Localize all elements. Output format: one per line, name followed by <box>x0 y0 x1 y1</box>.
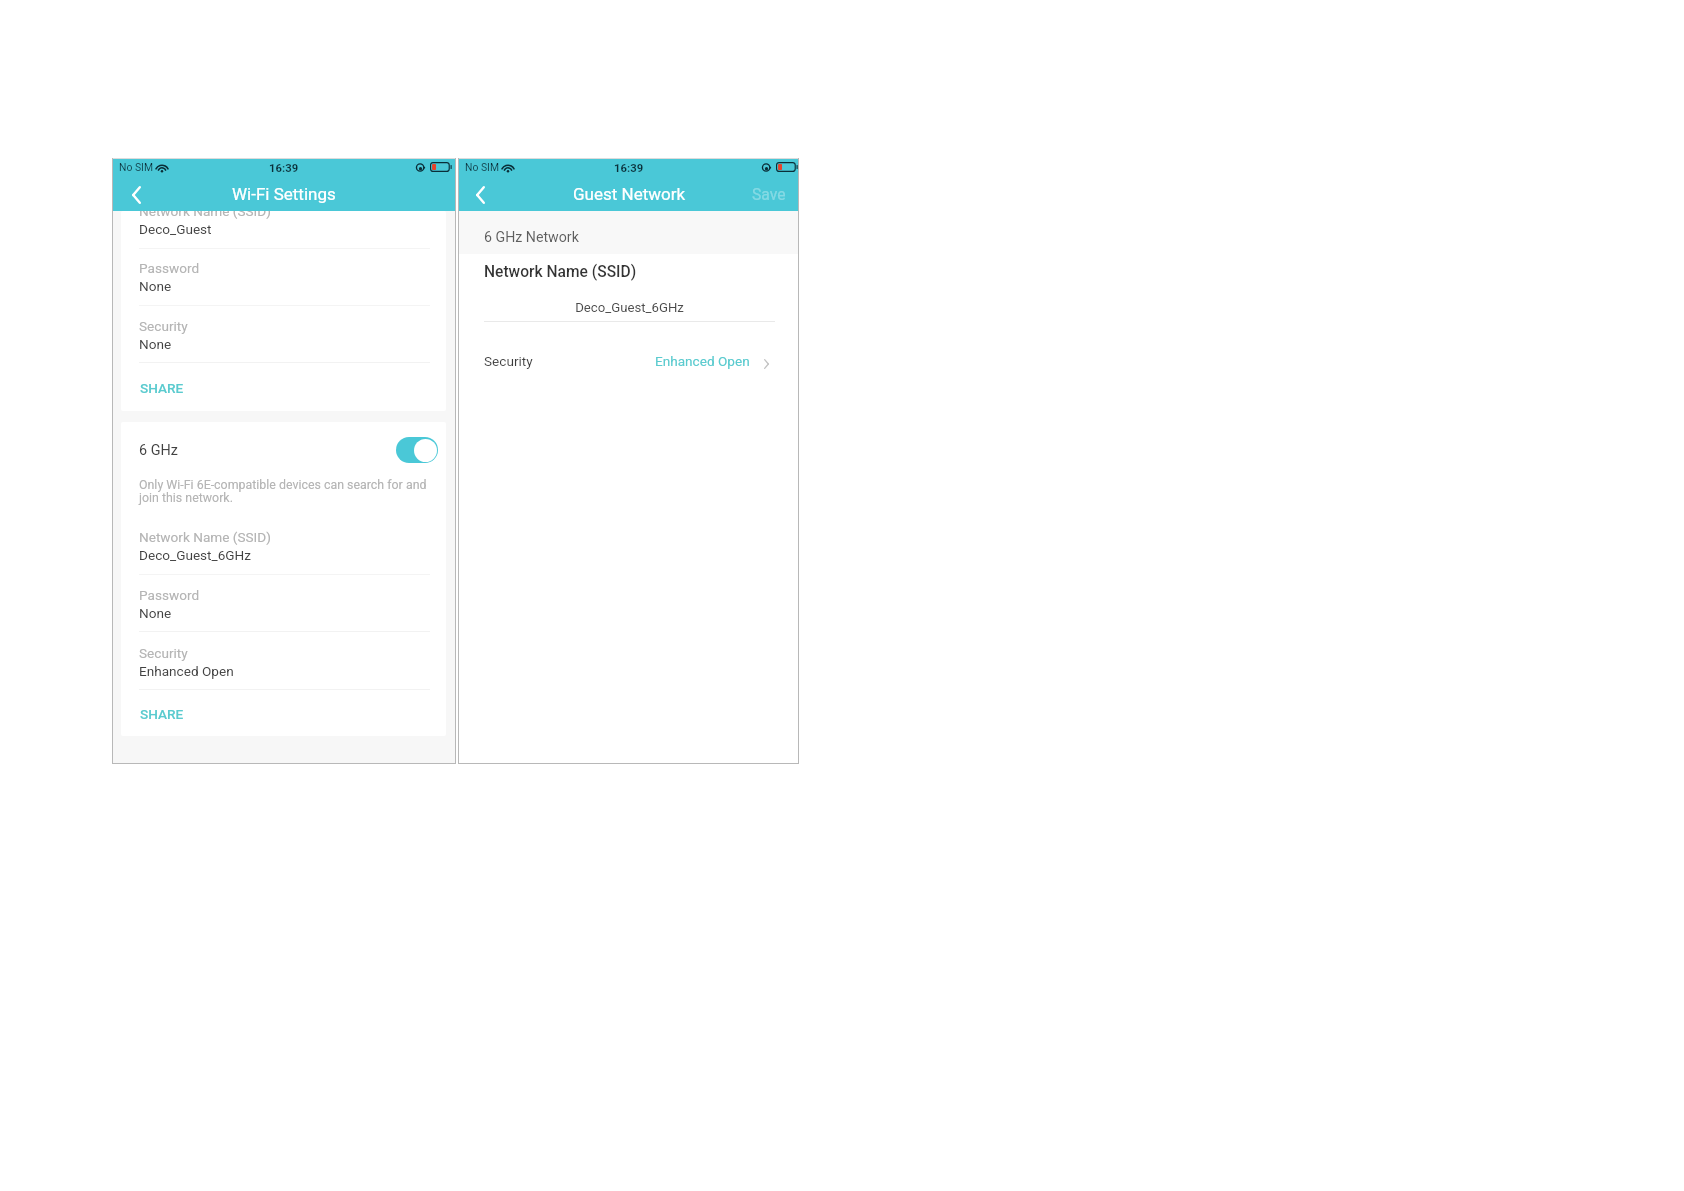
staticText: SHARE <box>140 380 184 396</box>
staticText: 6 GHz Network <box>484 229 579 246</box>
staticText: Wi-Fi Settings <box>232 184 336 204</box>
button[interactable]: Back <box>125 181 147 209</box>
staticText: None <box>139 336 172 352</box>
staticText: Save <box>752 185 786 203</box>
staticText: Guest Network <box>573 184 686 204</box>
button[interactable]: Toggle 6 GHz network <box>396 437 438 463</box>
button[interactable]: Back <box>469 181 491 209</box>
button[interactable]: Security: Enhanced Open <box>459 353 799 381</box>
staticText: Network Name (SSID) <box>139 203 271 219</box>
button[interactable]: Save <box>744 180 794 210</box>
staticText: Enhanced Open <box>139 663 234 679</box>
button[interactable]: SHARE <box>121 371 446 411</box>
staticText: Password <box>139 260 200 276</box>
button[interactable]: SHARE <box>121 697 446 737</box>
staticText: Deco_Guest_6GHz <box>139 547 252 563</box>
staticText: Network Name (SSID) <box>484 263 637 281</box>
staticText: No SIM <box>465 161 499 173</box>
staticText: None <box>139 278 172 294</box>
staticText: Enhanced Open <box>655 353 750 369</box>
staticText: Password <box>139 587 200 603</box>
staticText: 6 GHz <box>139 442 178 459</box>
staticText: Security <box>484 353 533 369</box>
staticText: SHARE <box>140 706 184 722</box>
staticText: 16:39 <box>614 162 644 175</box>
staticText: Deco_Guest_6GHz <box>575 300 684 315</box>
staticText: Deco_Guest <box>139 221 212 237</box>
staticText: Network Name (SSID) <box>139 529 271 545</box>
staticText: Security <box>139 318 188 334</box>
staticText: Security <box>139 645 188 661</box>
staticText: None <box>139 605 172 621</box>
staticText: No SIM <box>119 161 153 173</box>
staticText: 16:39 <box>269 162 299 175</box>
staticText: Only Wi-Fi 6E-compatible devices can sea… <box>139 477 431 505</box>
